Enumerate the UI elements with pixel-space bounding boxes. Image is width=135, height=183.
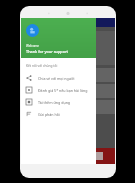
- staticText: Kết nối với chúng tôi: [26, 64, 58, 68]
- other: Share: [26, 75, 32, 81]
- staticText: Thank for your support: [26, 49, 69, 54]
- button[interactable]: Rate: [21, 84, 96, 96]
- button[interactable]: Welcome: [21, 18, 96, 58]
- button[interactable]: Feedback: [21, 108, 96, 120]
- staticText: Chia sẻ với mọi người: [38, 76, 75, 81]
- button[interactable]: Share: [21, 72, 96, 84]
- other: Feedback: [26, 111, 32, 117]
- staticText: Đánh giá 5* nếu bạn hài lòng: [38, 88, 88, 93]
- button[interactable]: More apps: [21, 96, 96, 108]
- staticText: Gửi phản hồi: [38, 112, 60, 117]
- staticText: Tải thêm ứng dụng: [38, 100, 71, 105]
- staticText: Welcome: [26, 44, 39, 48]
- other: More apps: [26, 99, 32, 105]
- other: Rate: [26, 87, 32, 93]
